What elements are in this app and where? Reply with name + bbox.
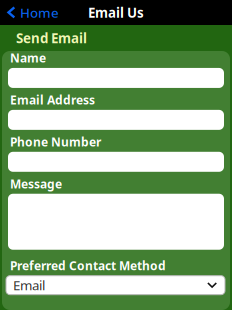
staticText: Send Email (16, 29, 87, 47)
button[interactable]: Preferred contact method: Email (8, 276, 224, 295)
staticText: Message (10, 176, 62, 192)
staticText: Preferred Contact Method (10, 258, 166, 274)
button[interactable]: Text field (8, 110, 224, 130)
button[interactable]: Text field (8, 194, 224, 250)
staticText: Home (20, 4, 59, 21)
staticText: Email (13, 276, 45, 294)
staticText: Phone Number (10, 134, 101, 150)
button[interactable]: Text field (8, 68, 224, 88)
button[interactable]: Back to Home (0, 0, 65, 25)
staticText: Email Address (10, 92, 95, 108)
button[interactable]: Text field (8, 152, 224, 172)
staticText: Name (10, 50, 46, 66)
staticText: Email Us (88, 4, 144, 21)
